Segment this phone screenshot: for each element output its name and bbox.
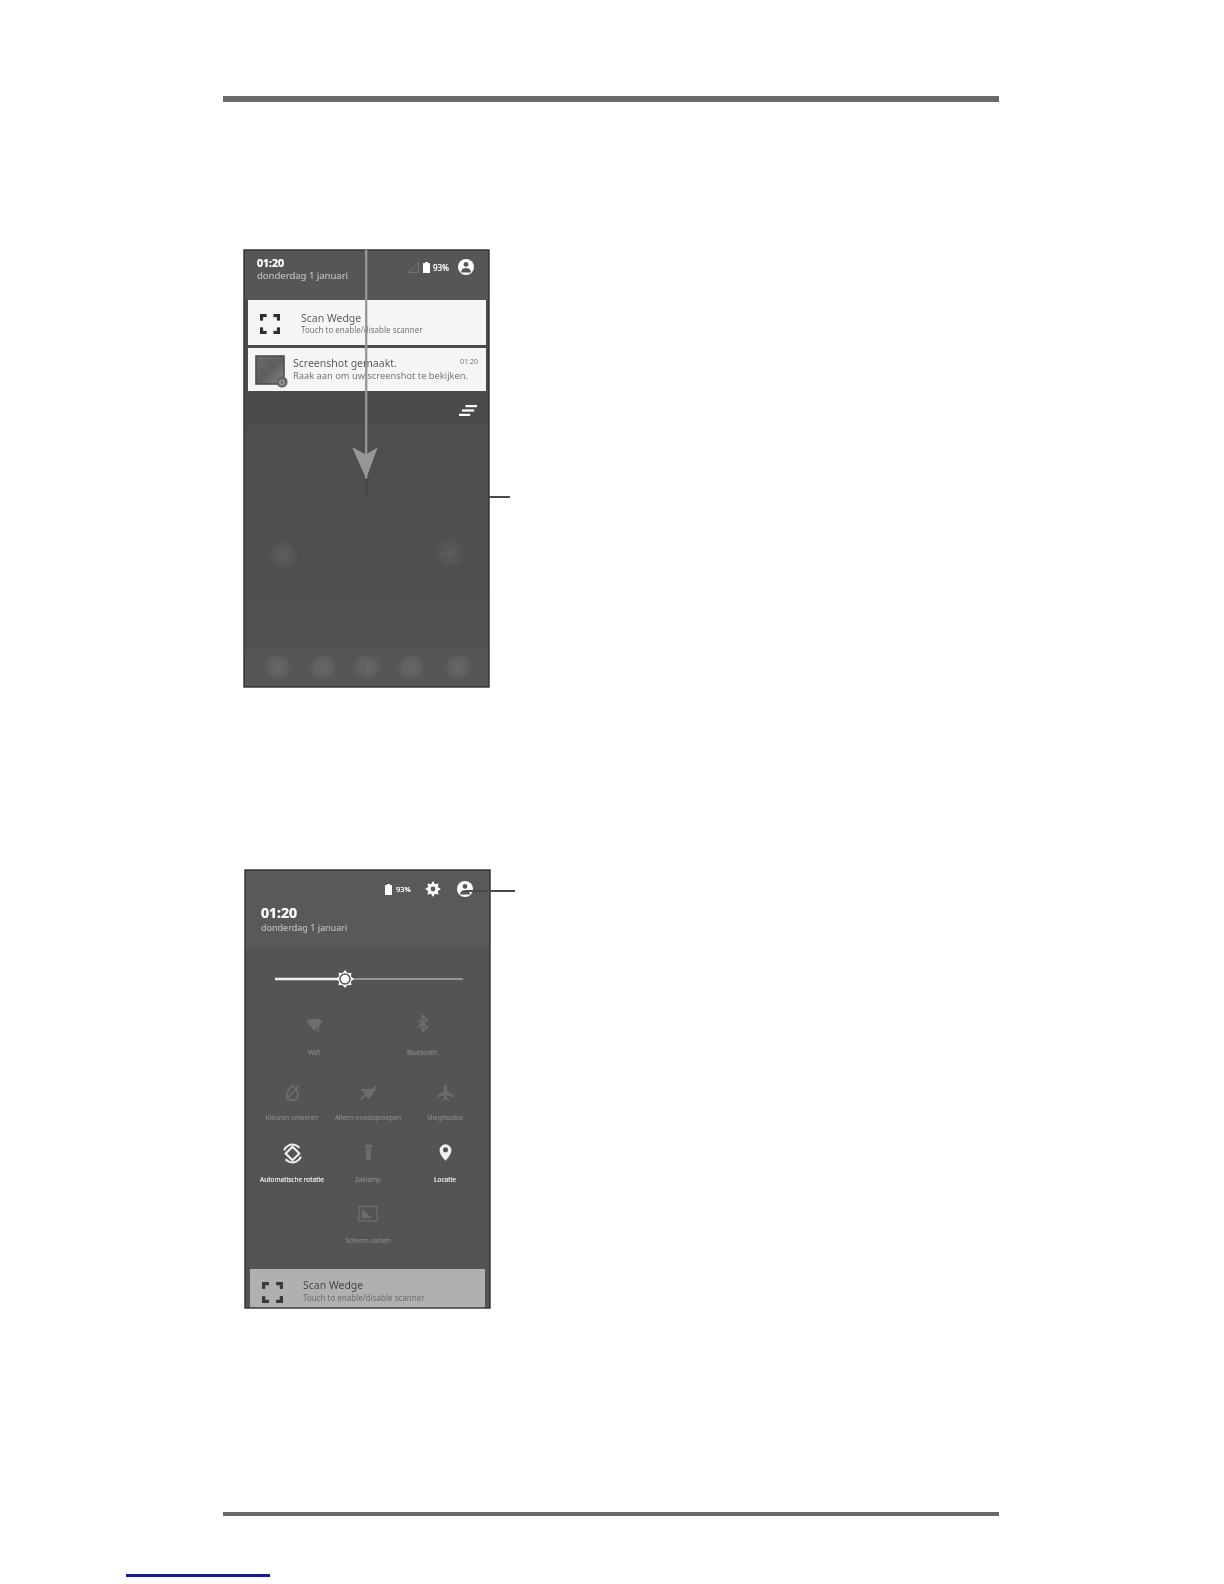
button[interactable]: Kleuren omkeren [254, 1084, 330, 1123]
staticText: Kleuren omkeren [254, 1113, 330, 1122]
staticText: Screenshot gemaakt. [293, 356, 397, 370]
button[interactable]: Clear all notifications [455, 401, 481, 420]
button[interactable]: Alleen noodoproepen [330, 1084, 406, 1123]
button[interactable]: Locatie [407, 1144, 483, 1185]
staticText: 01:20 [261, 903, 297, 922]
staticText: Wifi [284, 1048, 344, 1057]
staticText: Alleen noodoproepen [330, 1113, 406, 1122]
button[interactable]: Wifi [284, 1015, 344, 1058]
staticText: Vliegmodus [407, 1113, 483, 1122]
button[interactable]: Screenshot gemaakt. [248, 348, 486, 391]
staticText: 93% [396, 884, 411, 894]
button[interactable]: Zaklamp [330, 1144, 406, 1185]
staticText: Touch to enable/disable scanner [303, 1292, 425, 1303]
staticText: Automatische rotatie [254, 1175, 330, 1184]
staticText: Locatie [407, 1175, 483, 1184]
staticText: donderdag 1 januari [257, 269, 349, 282]
staticText: Touch to enable/disable scanner [301, 324, 423, 335]
staticText: Bluetooth [392, 1048, 452, 1057]
staticText: donderdag 1 januari [261, 921, 348, 933]
staticText: Scherm casten [330, 1236, 406, 1245]
button[interactable]: Brightness [336, 970, 354, 988]
button[interactable]: User account [457, 881, 473, 897]
staticText: Scan Wedge [301, 311, 362, 325]
button[interactable]: Vliegmodus [407, 1084, 483, 1123]
staticText: 93% [433, 262, 449, 273]
button[interactable]: Settings [425, 881, 441, 897]
staticText: Raak aan om uw screenshot te bekijken. [293, 369, 468, 382]
staticText: Zaklamp [330, 1175, 406, 1184]
button[interactable]: Bluetooth [392, 1015, 452, 1058]
staticText: Scan Wedge [303, 1278, 364, 1292]
button[interactable]: Scan Wedge [248, 300, 486, 345]
button[interactable]: Scherm casten [330, 1205, 406, 1246]
button[interactable]: Scan Wedge [250, 1269, 485, 1308]
staticText: 01:20 [460, 357, 478, 367]
button[interactable]: User account [458, 259, 474, 275]
button[interactable]: Automatische rotatie [254, 1144, 330, 1185]
staticText: 01:20 [257, 256, 284, 270]
